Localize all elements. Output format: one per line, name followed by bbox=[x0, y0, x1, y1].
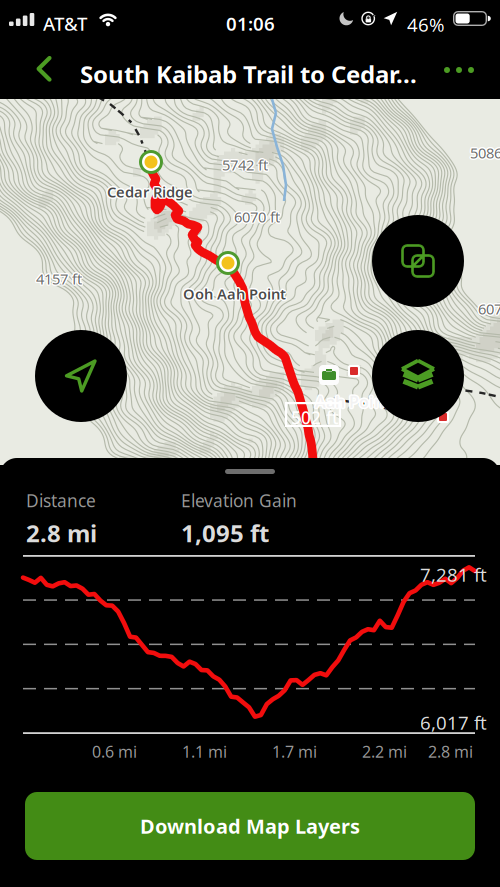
button[interactable]: Map layers bbox=[372, 330, 464, 422]
staticText: 7,281 ft bbox=[420, 562, 487, 587]
staticText: Cedar Ridge bbox=[107, 181, 193, 200]
staticText: 6070 ft bbox=[234, 207, 280, 226]
staticText: 607 bbox=[479, 298, 500, 317]
staticText: 6070 ft bbox=[234, 208, 280, 228]
staticText: Ooh Aah Point bbox=[182, 284, 285, 303]
staticText: Ooh Aah Point bbox=[182, 285, 285, 304]
staticText: Cedar Ridge bbox=[106, 181, 192, 200]
staticText: 6070 ft bbox=[233, 206, 279, 225]
staticText: AT&T bbox=[43, 11, 87, 36]
staticText: 5086 bbox=[471, 144, 500, 163]
staticText: 2.8 mi bbox=[428, 741, 473, 762]
staticText: 6070 ft bbox=[235, 208, 281, 227]
staticText: Elevation Gain bbox=[181, 489, 297, 512]
staticText: 6,017 ft bbox=[420, 710, 487, 735]
staticText: 5086 bbox=[471, 142, 500, 161]
button[interactable]: Compare maps bbox=[372, 215, 464, 307]
staticText: 5742 ft bbox=[223, 156, 269, 175]
staticText: 5086 bbox=[470, 144, 500, 164]
staticText: 6070 ft bbox=[233, 208, 279, 227]
staticText: Cedar Ridge bbox=[108, 181, 194, 200]
staticText: Cedar Ridge bbox=[106, 183, 192, 202]
staticText: Ooh Aah Point bbox=[183, 285, 286, 305]
staticText: Cedar Ridge bbox=[108, 183, 194, 202]
staticText: South Kaibab Trail to Cedar... bbox=[80, 58, 417, 90]
staticText: 607 bbox=[479, 299, 500, 318]
staticText: Aah Point bbox=[315, 390, 390, 411]
staticText: Aah Point bbox=[315, 392, 390, 414]
staticText: 502 ft bbox=[291, 406, 339, 429]
staticText: 4157 ft bbox=[36, 268, 82, 287]
staticText: 4157 ft bbox=[36, 269, 82, 288]
staticText: 6070 ft bbox=[233, 207, 279, 226]
staticText: Download Map Layers bbox=[140, 813, 360, 839]
staticText: 4157 ft bbox=[35, 268, 81, 287]
staticText: Cedar Ridge bbox=[108, 182, 194, 201]
staticText: 5742 ft bbox=[222, 154, 268, 173]
staticText: Aah Point bbox=[314, 392, 389, 413]
staticText: Cedar Ridge bbox=[106, 182, 192, 201]
staticText: 4157 ft bbox=[36, 270, 82, 290]
staticText: 5086 bbox=[469, 142, 500, 161]
staticText: 1.1 mi bbox=[182, 741, 227, 762]
staticText: Distance bbox=[26, 489, 96, 512]
staticText: 5086 bbox=[470, 142, 500, 161]
button[interactable]: Current location bbox=[35, 330, 127, 422]
staticText: 5742 ft bbox=[221, 156, 267, 175]
staticText: 5086 bbox=[469, 143, 500, 162]
staticText: 5742 ft bbox=[223, 155, 269, 174]
staticText: Ooh Aah Point bbox=[183, 283, 286, 302]
staticText: 5742 ft bbox=[221, 154, 267, 173]
staticText: Cedar Ridge bbox=[107, 182, 193, 201]
staticText: 607 bbox=[477, 300, 500, 319]
staticText: Aah Point bbox=[314, 390, 389, 411]
staticText: 5086 bbox=[469, 144, 500, 163]
staticText: 4157 ft bbox=[35, 269, 81, 288]
staticText: 5086 bbox=[470, 143, 500, 162]
staticText: 607 bbox=[479, 300, 500, 319]
staticText: 6070 ft bbox=[235, 206, 281, 225]
staticText: 0.6 mi bbox=[92, 741, 137, 762]
staticText: 1.7 mi bbox=[272, 741, 317, 762]
staticText: 01:06 bbox=[226, 11, 275, 36]
staticText: Ooh Aah Point bbox=[184, 285, 287, 304]
staticText: 2.2 mi bbox=[362, 741, 407, 762]
staticText: 5086 bbox=[471, 143, 500, 162]
staticText: 607 bbox=[477, 299, 500, 318]
staticText: 2.8 mi bbox=[26, 517, 97, 549]
staticText: Ooh Aah Point bbox=[184, 284, 287, 303]
staticText: 4157 ft bbox=[35, 270, 81, 289]
staticText: Aah Point bbox=[314, 391, 389, 412]
staticText: Aah Point bbox=[316, 390, 391, 411]
staticText: 46% bbox=[407, 12, 445, 37]
staticText: Ooh Aah Point bbox=[183, 284, 286, 303]
staticText: Ooh Aah Point bbox=[182, 283, 285, 302]
staticText: 607 bbox=[478, 298, 500, 317]
staticText: 607 bbox=[478, 300, 500, 320]
staticText: 5742 ft bbox=[221, 155, 267, 174]
staticText: 4157 ft bbox=[37, 269, 83, 288]
staticText: 5742 ft bbox=[222, 155, 268, 174]
staticText: 5742 ft bbox=[223, 154, 269, 173]
staticText: Aah Point bbox=[316, 391, 391, 412]
staticText: 607 bbox=[478, 299, 500, 318]
staticText: 4157 ft bbox=[37, 268, 83, 287]
button[interactable]: Download Map Layers bbox=[25, 792, 475, 860]
staticText: 6070 ft bbox=[234, 206, 280, 225]
button[interactable]: More options bbox=[432, 40, 494, 99]
staticText: 6070 ft bbox=[235, 207, 281, 226]
staticText: 4157 ft bbox=[37, 270, 83, 289]
button[interactable]: Back bbox=[0, 40, 74, 99]
staticText: Cedar Ridge bbox=[107, 183, 193, 203]
staticText: 607 bbox=[477, 298, 500, 317]
staticText: Ooh Aah Point bbox=[184, 283, 287, 302]
staticText: 1,095 ft bbox=[181, 517, 269, 549]
staticText: Aah Point bbox=[315, 391, 390, 412]
staticText: Aah Point bbox=[316, 392, 391, 413]
staticText: 5742 ft bbox=[222, 156, 268, 176]
